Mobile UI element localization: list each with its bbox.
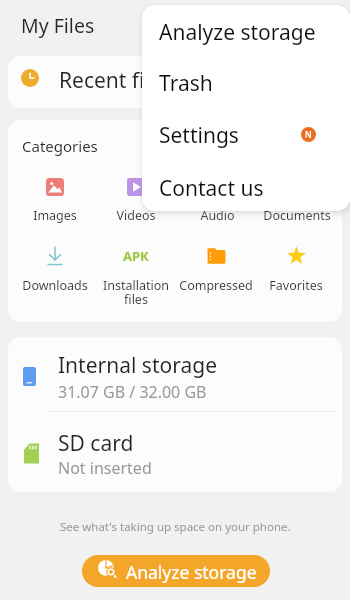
staticText: 31.07 GB / 32.00 GB bbox=[58, 381, 207, 403]
button[interactable]: Images bbox=[14, 178, 96, 238]
button[interactable]: SD card bbox=[8, 412, 342, 492]
button[interactable]: Favorites bbox=[255, 246, 337, 308]
staticText: Internal storage bbox=[58, 351, 217, 380]
button[interactable]: Contact us bbox=[142, 162, 350, 211]
staticText: APK bbox=[123, 247, 149, 262]
staticText: Contact us bbox=[159, 174, 264, 203]
button[interactable]: Downloads bbox=[14, 246, 96, 308]
staticText: Compressed bbox=[179, 277, 253, 294]
button[interactable]: Compressed bbox=[175, 247, 257, 308]
staticText: Documents bbox=[263, 207, 331, 224]
button[interactable]: Settings bbox=[142, 109, 350, 161]
button[interactable]: Trash bbox=[142, 57, 350, 109]
staticText: Audio bbox=[200, 207, 235, 224]
staticText: My Files bbox=[21, 12, 95, 39]
staticText: Images bbox=[33, 207, 77, 224]
staticText: Not inserted bbox=[58, 457, 152, 479]
button[interactable]: Analyze storage bbox=[82, 555, 270, 587]
staticText: Categories bbox=[22, 136, 98, 156]
button[interactable]: Internal storage bbox=[8, 337, 342, 411]
button[interactable]: Documents bbox=[256, 177, 338, 238]
button[interactable]: Videos bbox=[95, 178, 177, 238]
staticText: Analyze storage bbox=[126, 560, 257, 584]
staticText: Videos bbox=[116, 207, 156, 224]
staticText: Trash bbox=[159, 69, 213, 98]
staticText: Analyze storage bbox=[159, 18, 316, 47]
staticText: Downloads bbox=[22, 277, 88, 294]
staticText: See what's taking up space on your phone… bbox=[60, 519, 291, 535]
staticText: N bbox=[305, 129, 312, 141]
staticText: Recent files bbox=[59, 66, 172, 95]
staticText: Settings bbox=[159, 121, 239, 150]
button[interactable]: Recent files bbox=[8, 56, 342, 108]
button[interactable]: APK bbox=[95, 247, 177, 308]
staticText: Favorites bbox=[269, 277, 323, 294]
button[interactable]: Analyze storage bbox=[142, 6, 350, 58]
button[interactable]: Audio bbox=[176, 177, 258, 238]
staticText: Installation files bbox=[103, 277, 169, 308]
staticText: SD card bbox=[58, 429, 134, 458]
